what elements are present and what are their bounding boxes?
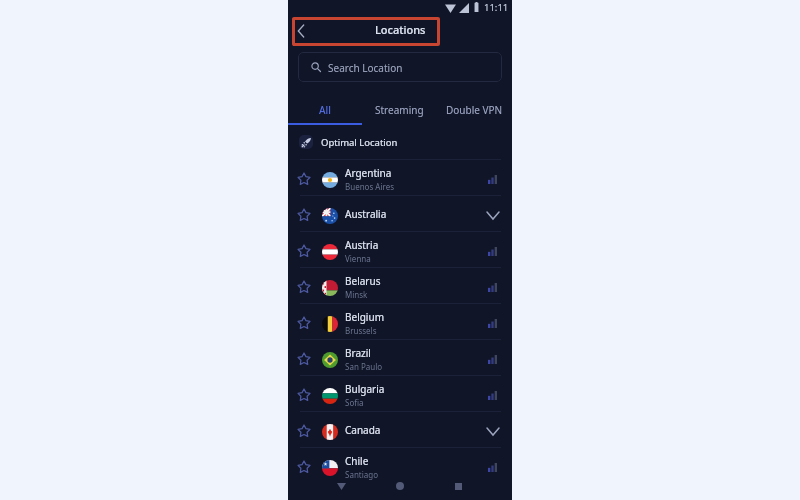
staticText: Double VPN: [446, 103, 503, 117]
button[interactable]: Favourite: [288, 448, 512, 483]
button[interactable]: All: [288, 100, 362, 125]
button[interactable]: Favourite: [288, 196, 512, 231]
staticText: Santiago: [345, 469, 379, 480]
other: Expand: [487, 428, 499, 435]
staticText: San Paulo: [345, 361, 383, 372]
other: Favourite: [297, 208, 311, 222]
staticText: Search Location: [328, 61, 403, 75]
button[interactable]: Favourite: [288, 160, 512, 195]
other: Favourite: [297, 280, 311, 294]
button[interactable]: Optimal Location: [288, 125, 512, 159]
button[interactable]: Favourite: [288, 304, 512, 339]
button[interactable]: Favourite: [288, 232, 512, 267]
staticText: Australia: [345, 207, 387, 221]
button[interactable]: Favourite: [288, 268, 512, 303]
staticText: Sofia: [345, 397, 364, 408]
other: Favourite: [297, 172, 311, 186]
staticText: Buenos Aires: [345, 181, 395, 192]
other: Favourite: [297, 460, 311, 474]
other: Favourite: [297, 316, 311, 330]
staticText: Austria: [345, 238, 379, 252]
staticText: All: [319, 103, 331, 117]
staticText: Argentina: [345, 166, 392, 180]
button[interactable]: Back: [291, 21, 311, 41]
button[interactable]: Home: [390, 476, 410, 496]
other: Expand: [487, 212, 499, 219]
staticText: Canada: [345, 423, 381, 437]
button[interactable]: Search Location: [298, 52, 502, 82]
other: Favourite: [297, 424, 311, 438]
button[interactable]: Favourite: [288, 376, 512, 411]
staticText: Minsk: [345, 289, 368, 300]
staticText: Bulgaria: [345, 382, 385, 396]
staticText: 11:11: [484, 1, 509, 14]
staticText: Belarus: [345, 274, 381, 288]
other: Favourite: [297, 244, 311, 258]
other: Favourite: [297, 388, 311, 402]
staticText: Belgium: [345, 310, 384, 324]
staticText: Brazil: [345, 346, 371, 360]
button[interactable]: Recents: [448, 476, 468, 496]
button[interactable]: Back: [331, 476, 351, 496]
button[interactable]: Favourite: [288, 340, 512, 375]
staticText: Streaming: [375, 103, 424, 117]
staticText: Chile: [345, 454, 369, 468]
button[interactable]: Streaming: [362, 100, 437, 125]
staticText: Optimal Location: [321, 136, 398, 149]
button[interactable]: Double VPN: [437, 100, 512, 125]
other: Favourite: [297, 352, 311, 366]
staticText: Vienna: [345, 253, 371, 264]
button[interactable]: Favourite: [288, 412, 512, 447]
staticText: Brussels: [345, 325, 377, 336]
staticText: Locations: [375, 22, 426, 37]
